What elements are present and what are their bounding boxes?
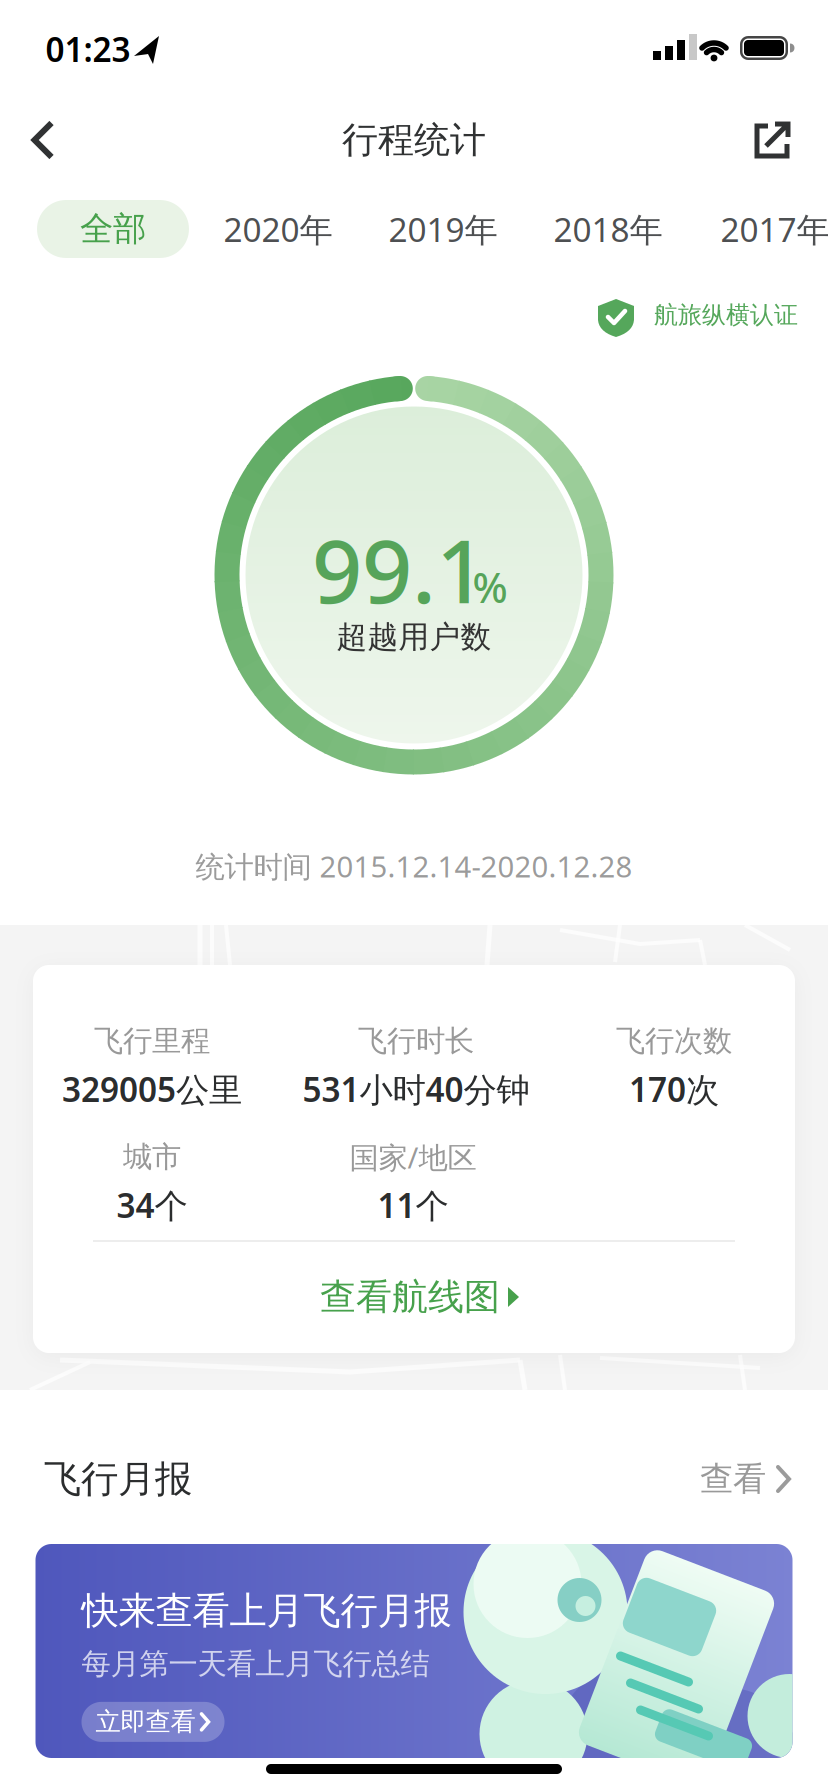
button[interactable]: 2018年 bbox=[528, 200, 688, 258]
staticText: 查看航线图 bbox=[320, 1275, 500, 1319]
button[interactable]: 2017年 bbox=[695, 200, 828, 258]
staticText: 立即查看 bbox=[95, 1706, 195, 1737]
staticText: 统计时间 2015.12.14-2020.12.28 bbox=[195, 846, 632, 885]
staticText: 531小时40分钟 bbox=[302, 1067, 529, 1111]
staticText: 飞行次数 bbox=[616, 1023, 732, 1059]
staticText: 飞行月报 bbox=[44, 1456, 192, 1502]
button[interactable]: 2019年 bbox=[363, 200, 523, 258]
staticText: 99.1 bbox=[312, 511, 486, 627]
staticText: 查看 bbox=[700, 1458, 766, 1499]
button[interactable] bbox=[21, 118, 65, 162]
staticText: 2018年 bbox=[553, 207, 662, 251]
staticText: 34个 bbox=[116, 1183, 187, 1227]
staticText: 01:23 bbox=[45, 27, 130, 71]
staticText: 329005公里 bbox=[62, 1067, 242, 1111]
staticText: 航旅纵横认证 bbox=[654, 300, 798, 330]
button[interactable]: 查看 bbox=[676, 1451, 816, 1507]
staticText: 国家/地区 bbox=[349, 1137, 476, 1176]
staticText: 飞行里程 bbox=[94, 1023, 210, 1059]
button[interactable] bbox=[748, 117, 796, 165]
staticText: 2017年 bbox=[720, 207, 828, 251]
staticText: 飞行时长 bbox=[358, 1023, 474, 1059]
button[interactable]: 航旅纵横认证 bbox=[594, 293, 798, 337]
button[interactable]: 快来查看上月飞行月报 bbox=[35, 1544, 792, 1758]
staticText: 城市 bbox=[123, 1139, 181, 1175]
staticText: % bbox=[472, 560, 507, 614]
staticText: 2020年 bbox=[223, 207, 332, 251]
staticText: 每月第一天看上月飞行总结 bbox=[81, 1646, 429, 1682]
staticText: 全部 bbox=[80, 208, 146, 249]
button[interactable]: 查看航线图 bbox=[270, 1262, 570, 1332]
staticText: 11个 bbox=[377, 1183, 448, 1227]
staticText: 超越用户数 bbox=[336, 618, 491, 656]
button[interactable]: 2020年 bbox=[198, 200, 358, 258]
staticText: 快来查看上月飞行月报 bbox=[81, 1588, 451, 1634]
button[interactable]: 全部 bbox=[37, 200, 189, 258]
staticText: 行程统计 bbox=[342, 118, 486, 162]
staticText: 2019年 bbox=[388, 207, 497, 251]
staticText: 170次 bbox=[629, 1067, 719, 1111]
